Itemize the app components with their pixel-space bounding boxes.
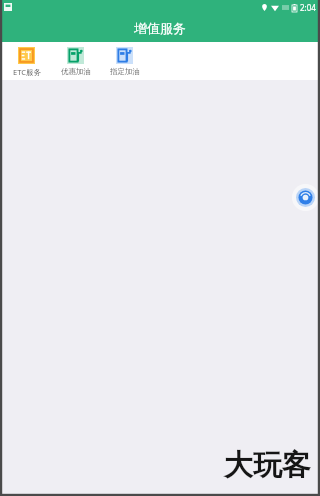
staticText: 增值服务 [134, 20, 186, 36]
staticText: 指定加油 [110, 67, 140, 76]
staticText: 优惠加油 [61, 67, 91, 76]
staticText: 2:04 [300, 2, 316, 13]
button[interactable]: Floating assistant [292, 184, 319, 211]
button[interactable]: 指定加油 [100, 47, 149, 76]
staticText: 大玩客 [224, 447, 311, 484]
staticText: ETC服务 [13, 67, 41, 77]
button[interactable]: 优惠加油 [51, 47, 100, 76]
button[interactable]: ETC服务 [2, 47, 51, 77]
